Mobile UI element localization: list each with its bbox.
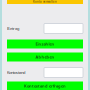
staticText: Kontostand erfragen: [24, 83, 66, 89]
staticText: Konto verwalten: [33, 0, 57, 3]
staticText: Abheben: [35, 54, 54, 60]
button[interactable]: Abheben: [7, 52, 83, 61]
button[interactable]: Betrag: [44, 23, 83, 33]
button[interactable]: Kontostand erfragen: [7, 81, 83, 90]
staticText: Kontostand: [7, 70, 25, 75]
staticText: Betrag: [7, 26, 19, 31]
staticText: Einzahlen: [35, 41, 54, 47]
button[interactable]: Kontostand: [44, 67, 83, 77]
button[interactable]: Einzahlen: [7, 39, 83, 48]
